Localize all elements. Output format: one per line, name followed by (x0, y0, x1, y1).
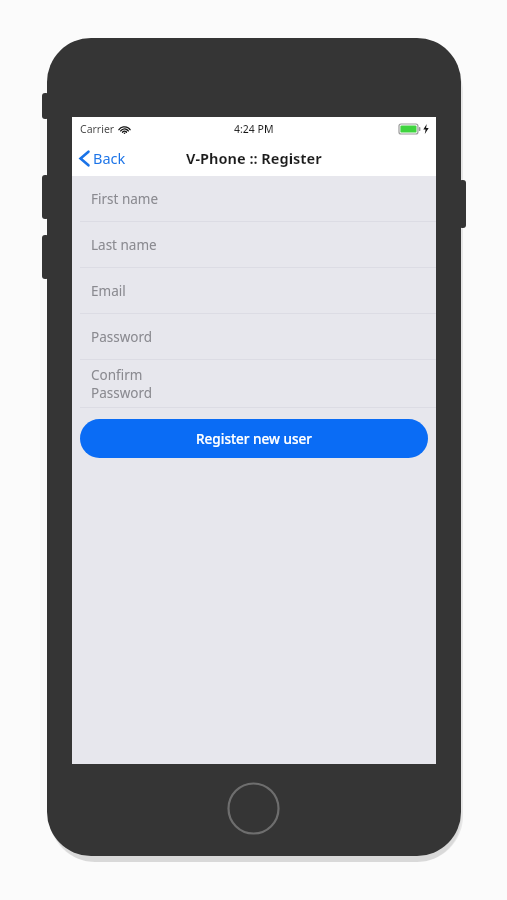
staticText: First name (91, 190, 159, 208)
button[interactable]: First name (72, 176, 436, 221)
staticText: 4:24 PM (234, 122, 274, 136)
staticText: Last name (91, 236, 157, 254)
staticText: Password (91, 384, 153, 402)
button[interactable]: Password (72, 314, 436, 359)
button[interactable]: Confirm (72, 360, 436, 407)
button[interactable]: Email (72, 268, 436, 313)
staticText: Email (91, 282, 126, 300)
button[interactable]: Home (227, 782, 280, 835)
staticText: Carrier (80, 122, 115, 136)
staticText: Confirm (91, 366, 143, 384)
staticText: Back (93, 148, 126, 168)
staticText: V-Phone :: Register (186, 148, 322, 168)
button[interactable]: Back (72, 140, 136, 176)
staticText: Password (91, 328, 153, 346)
button[interactable]: Last name (72, 222, 436, 267)
staticText: Register new user (196, 430, 312, 448)
button[interactable]: Register new user (80, 419, 428, 458)
